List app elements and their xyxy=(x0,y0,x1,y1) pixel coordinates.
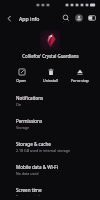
button[interactable]: Force stop xyxy=(65,65,94,85)
button[interactable]: Storage & cache xyxy=(0,137,100,157)
staticText: On xyxy=(16,102,22,107)
button[interactable]: Back xyxy=(3,12,15,24)
staticText: Screen time xyxy=(16,187,42,193)
staticText: No data used xyxy=(16,171,39,176)
button[interactable]: Notifications xyxy=(0,91,100,111)
staticText: Force stop xyxy=(71,78,89,83)
staticText: Permissions xyxy=(16,118,43,124)
button[interactable]: Permissions xyxy=(0,114,100,134)
staticText: Mobile data & Wi-Fi xyxy=(16,164,58,170)
button[interactable]: Search xyxy=(60,12,72,24)
staticText: 2.18 GB used in internal storage xyxy=(16,148,71,153)
staticText: Open xyxy=(16,78,26,83)
button[interactable]: More options xyxy=(86,12,98,24)
button[interactable]: Open xyxy=(6,65,36,85)
staticText: Uninstall xyxy=(43,78,58,83)
staticText: App info xyxy=(19,15,40,22)
staticText: Colliefox' Crystal Guardians xyxy=(22,53,79,59)
button[interactable]: Screen time xyxy=(0,183,100,200)
staticText: Notifications xyxy=(16,95,44,101)
button[interactable]: Uninstall xyxy=(36,65,65,85)
staticText: 5 minutes today xyxy=(16,194,44,196)
button[interactable]: Mobile data & Wi-Fi xyxy=(0,160,100,180)
button[interactable]: Account xyxy=(73,12,85,24)
staticText: Storage xyxy=(16,125,30,130)
staticText: Storage & cache xyxy=(16,141,51,147)
